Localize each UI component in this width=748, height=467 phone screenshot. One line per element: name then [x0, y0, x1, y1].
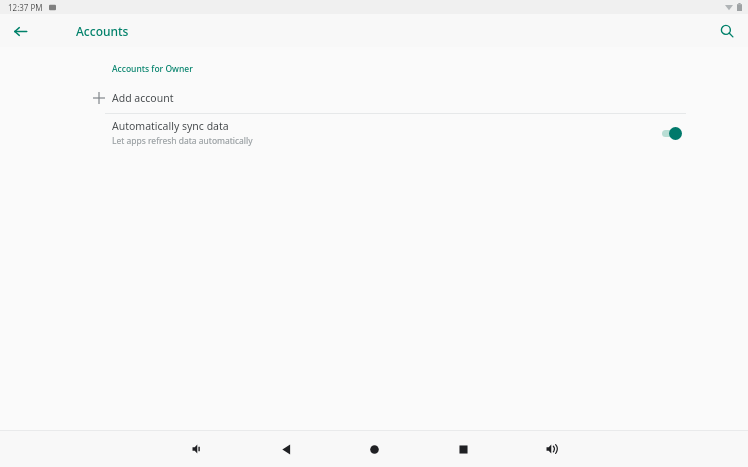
staticText: Accounts [76, 23, 129, 39]
button[interactable]: Back [7, 18, 33, 44]
button[interactable]: Home [357, 432, 391, 466]
staticText: Automatically sync data [112, 119, 229, 133]
staticText: 12:37 PM [8, 2, 43, 13]
staticText: Add account [112, 91, 174, 105]
button[interactable]: Automatically sync data toggle [660, 123, 686, 143]
button[interactable]: Search [714, 18, 740, 44]
button[interactable]: Automatically sync data [112, 114, 686, 152]
button[interactable]: Add account [0, 83, 748, 113]
staticText: Accounts for Owner [112, 63, 193, 75]
button[interactable]: Volume down [180, 432, 214, 466]
staticText: Let apps refresh data automatically [112, 135, 253, 147]
button[interactable]: Recents [446, 432, 480, 466]
button[interactable]: Volume up [534, 432, 568, 466]
button[interactable]: Back [269, 432, 303, 466]
